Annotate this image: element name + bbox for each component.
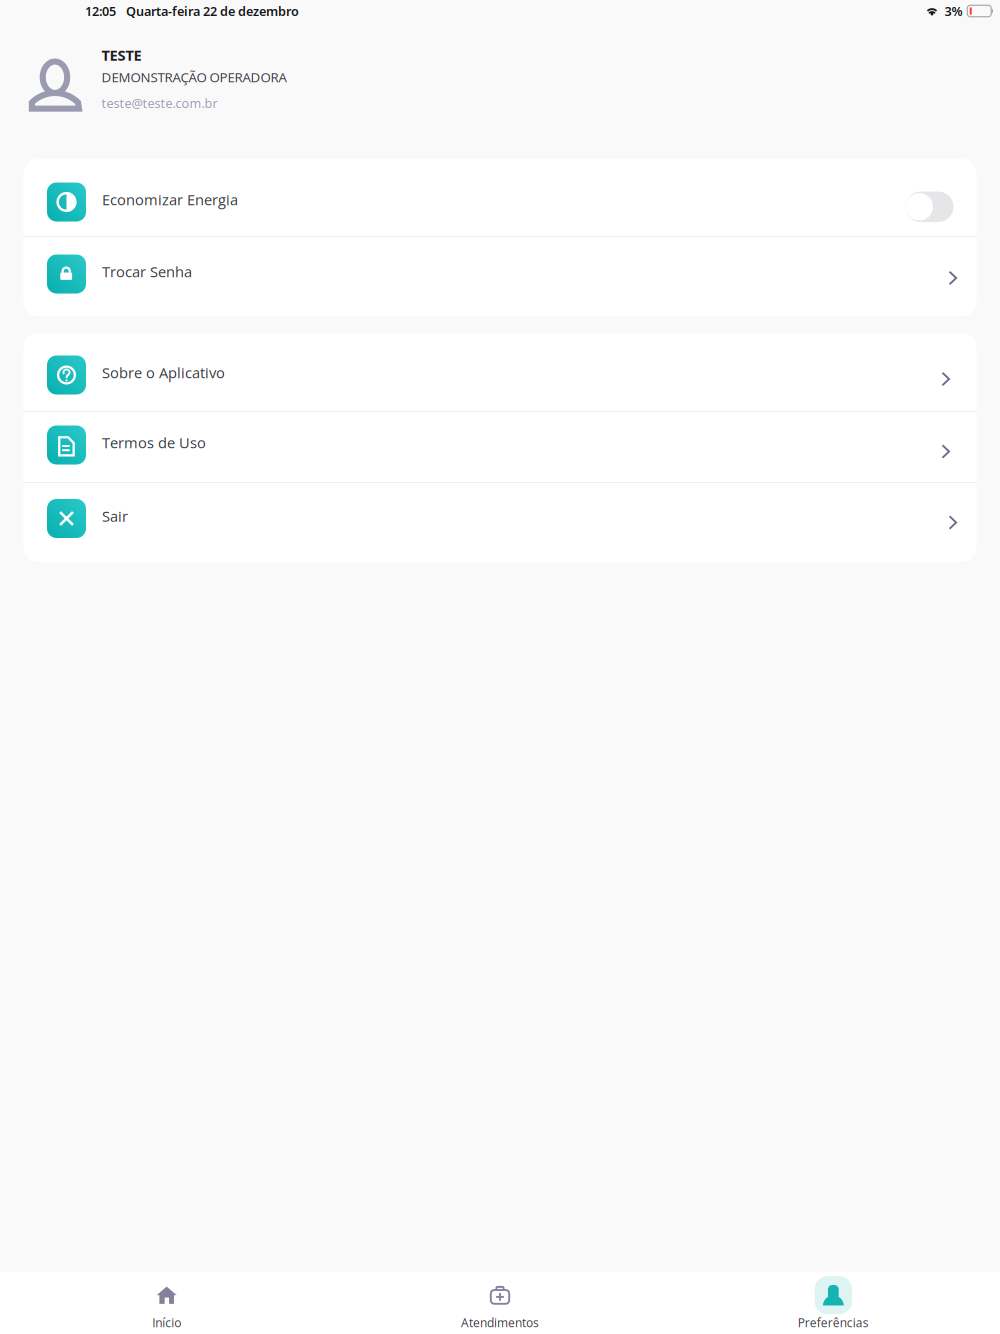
staticText: Atendimentos: [461, 1314, 539, 1331]
staticText: Sobre o Aplicativo: [102, 362, 225, 382]
button[interactable]: Sair: [23, 483, 976, 562]
staticText: DEMONSTRAÇÃO OPERADORA: [101, 68, 286, 86]
button[interactable]: Preferências: [667, 1272, 1000, 1334]
button[interactable]: Termos de Uso: [23, 412, 976, 482]
staticText: Economizar Energia: [102, 189, 238, 209]
button[interactable]: Economizar Energia: [23, 159, 976, 236]
staticText: Trocar Senha: [102, 261, 192, 281]
staticText: Termos de Uso: [102, 432, 206, 452]
button[interactable]: Sobre o Aplicativo: [23, 333, 976, 411]
staticText: Início: [152, 1314, 181, 1331]
button[interactable]: Atendimentos: [333, 1272, 667, 1334]
staticText: Quarta-feira 22 de dezembro: [126, 2, 299, 20]
staticText: teste@teste.com.br: [101, 94, 217, 112]
staticText: TESTE: [101, 45, 141, 65]
button[interactable]: Início: [0, 1272, 333, 1334]
button[interactable]: Trocar Senha: [23, 237, 976, 316]
staticText: 12:05: [85, 2, 116, 20]
staticText: Preferências: [798, 1314, 869, 1331]
staticText: Sair: [102, 506, 128, 526]
staticText: 3%: [944, 2, 962, 20]
